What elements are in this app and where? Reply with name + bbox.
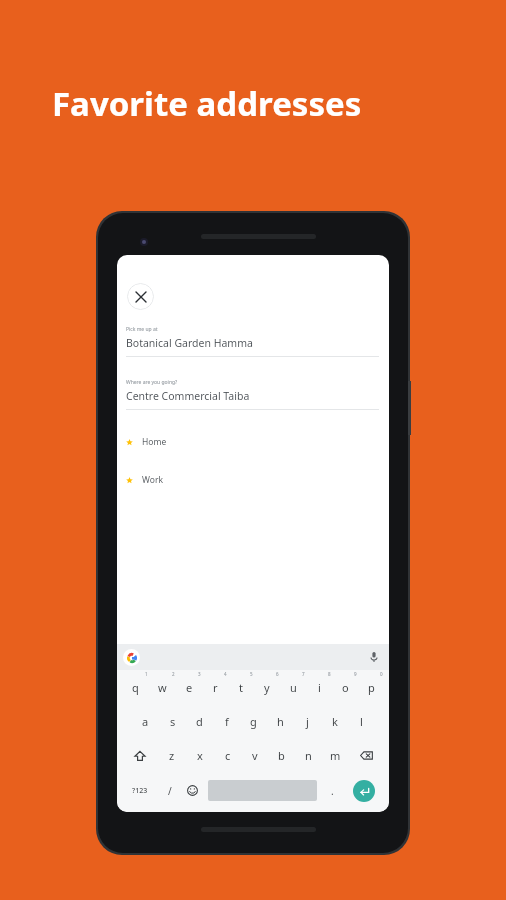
- button[interactable]: Enter: [353, 780, 375, 802]
- staticText: 3: [198, 671, 201, 677]
- staticText: d: [196, 714, 203, 729]
- button[interactable]: Shift: [122, 738, 158, 773]
- staticText: b: [278, 748, 285, 763]
- staticText: /: [168, 784, 172, 798]
- staticText: 1: [145, 671, 148, 677]
- staticText: g: [250, 714, 257, 729]
- button[interactable]: Google: [123, 649, 140, 666]
- staticText: 0: [380, 671, 383, 677]
- staticText: u: [290, 680, 297, 695]
- staticText: e: [186, 680, 193, 695]
- staticText: Botanical Garden Hamma: [126, 336, 253, 350]
- staticText: j: [306, 714, 309, 729]
- button[interactable]: Close: [127, 283, 154, 310]
- button[interactable]: f: [213, 704, 240, 738]
- staticText: y: [264, 680, 270, 695]
- staticText: 5: [250, 671, 253, 677]
- staticText: i: [318, 680, 321, 695]
- button[interactable]: d: [186, 704, 213, 738]
- staticText: m: [330, 748, 341, 763]
- staticText: Centre Commercial Taiba: [126, 389, 250, 403]
- button[interactable]: r: [202, 670, 228, 704]
- button[interactable]: w: [149, 670, 176, 704]
- button[interactable]: x: [186, 738, 214, 773]
- staticText: 2: [172, 671, 175, 677]
- staticText: w: [158, 680, 167, 695]
- button[interactable]: u: [280, 670, 306, 704]
- button[interactable]: Work: [126, 470, 379, 490]
- staticText: h: [277, 714, 284, 729]
- staticText: p: [368, 680, 375, 695]
- button[interactable]: v: [241, 738, 268, 773]
- staticText: r: [213, 680, 218, 695]
- button[interactable]: z: [158, 738, 186, 773]
- staticText: q: [132, 680, 139, 695]
- button[interactable]: e: [176, 670, 202, 704]
- staticText: n: [305, 748, 312, 763]
- button[interactable]: i: [306, 670, 332, 704]
- staticText: 7: [302, 671, 305, 677]
- staticText: f: [225, 714, 229, 729]
- staticText: Pick me up at: [126, 326, 158, 333]
- staticText: Where are you going?: [126, 379, 178, 386]
- staticText: o: [342, 680, 349, 695]
- button[interactable]: b: [268, 738, 295, 773]
- button[interactable]: .: [321, 776, 344, 805]
- staticText: Favorite addresses: [52, 81, 362, 126]
- button[interactable]: a: [131, 704, 159, 738]
- staticText: t: [239, 680, 243, 695]
- staticText: c: [225, 748, 231, 763]
- button[interactable]: q: [122, 670, 149, 704]
- staticText: k: [332, 714, 338, 729]
- staticText: a: [142, 714, 149, 729]
- staticText: x: [197, 748, 203, 763]
- button[interactable]: Voice input: [367, 650, 381, 664]
- staticText: ?123: [132, 786, 148, 796]
- button[interactable]: s: [159, 704, 186, 738]
- button[interactable]: g: [240, 704, 267, 738]
- staticText: 8: [328, 671, 331, 677]
- button[interactable]: Pick me up at: [126, 326, 379, 357]
- button[interactable]: Emoji: [181, 776, 204, 805]
- staticText: z: [169, 748, 175, 763]
- button[interactable]: h: [267, 704, 294, 738]
- button[interactable]: o: [332, 670, 358, 704]
- button[interactable]: /: [158, 776, 181, 805]
- button[interactable]: l: [348, 704, 375, 738]
- button[interactable]: p: [358, 670, 384, 704]
- button[interactable]: m: [322, 738, 349, 773]
- staticText: s: [170, 714, 176, 729]
- staticText: l: [360, 714, 363, 729]
- button[interactable]: Where are you going?: [126, 379, 379, 410]
- staticText: .: [331, 784, 334, 798]
- button[interactable]: y: [254, 670, 280, 704]
- button[interactable]: n: [295, 738, 322, 773]
- button[interactable]: Backspace: [349, 738, 384, 773]
- staticText: Home: [142, 436, 167, 448]
- button[interactable]: k: [321, 704, 348, 738]
- staticText: v: [252, 748, 258, 763]
- staticText: 9: [354, 671, 357, 677]
- button[interactable]: ?123: [122, 776, 158, 805]
- button[interactable]: t: [228, 670, 254, 704]
- button[interactable]: j: [294, 704, 321, 738]
- staticText: 4: [224, 671, 227, 677]
- staticText: Work: [142, 474, 163, 486]
- button[interactable]: Home: [126, 432, 379, 452]
- staticText: 6: [276, 671, 279, 677]
- button[interactable]: c: [214, 738, 241, 773]
